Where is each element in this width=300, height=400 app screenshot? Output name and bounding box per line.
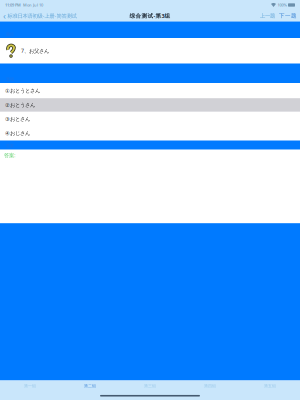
staticText: ②おとうさん [5, 102, 35, 108]
staticText: 第二组 [84, 383, 96, 388]
staticText: 上一题 [260, 12, 275, 19]
staticText: 7、お父さん [21, 47, 49, 54]
button[interactable]: 第一组 [0, 380, 60, 391]
button[interactable]: 第四组 [180, 380, 240, 391]
staticText: ①おとうとさん [5, 87, 40, 94]
button[interactable]: ④おじさん [0, 126, 300, 140]
staticText: 下一题 [279, 12, 297, 19]
button[interactable]: ‹ [3, 10, 76, 22]
staticText: Mon Jul 10 [21, 2, 43, 8]
staticText: ③おとさん [5, 116, 30, 122]
staticText: 综合测试-第3组 [129, 12, 170, 19]
button[interactable]: 第二组 [60, 380, 120, 391]
button[interactable]: 下一题 [275, 12, 297, 19]
staticText: 11:09 PM [5, 2, 21, 8]
button[interactable]: ②おとうさん [0, 98, 300, 112]
staticText: 第五组 [264, 383, 276, 388]
button[interactable]: ③おとさん [0, 112, 300, 126]
button[interactable]: 第五组 [240, 380, 300, 391]
staticText: ④おじさん [5, 130, 30, 137]
button[interactable]: 上一题 [260, 12, 275, 19]
button[interactable]: 第三组 [120, 380, 180, 391]
button[interactable]: ①おとうとさん [0, 83, 300, 98]
staticText: 第四组 [204, 383, 216, 388]
staticText: 第三组 [144, 383, 156, 388]
staticText: ‹ [3, 10, 6, 22]
staticText: 100% [277, 2, 286, 8]
staticText: 答案: [4, 152, 15, 159]
staticText: 答案 [6, 143, 14, 148]
staticText: 选项 [6, 77, 14, 81]
staticText: 标准日本语初级-上册-简答测试 [7, 12, 76, 19]
staticText: 第一组 [24, 383, 36, 388]
